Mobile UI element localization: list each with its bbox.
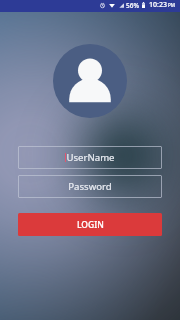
button[interactable]: UserName: [18, 146, 162, 169]
staticText: PM: [168, 2, 176, 8]
staticText: LOGIN: [77, 219, 104, 231]
button[interactable]: Password: [18, 175, 162, 198]
staticText: UserName: [66, 151, 115, 164]
button[interactable]: LOGIN: [18, 213, 162, 236]
staticText: Password: [68, 180, 112, 193]
staticText: 10:23: [149, 0, 167, 10]
staticText: 56%: [126, 1, 139, 10]
